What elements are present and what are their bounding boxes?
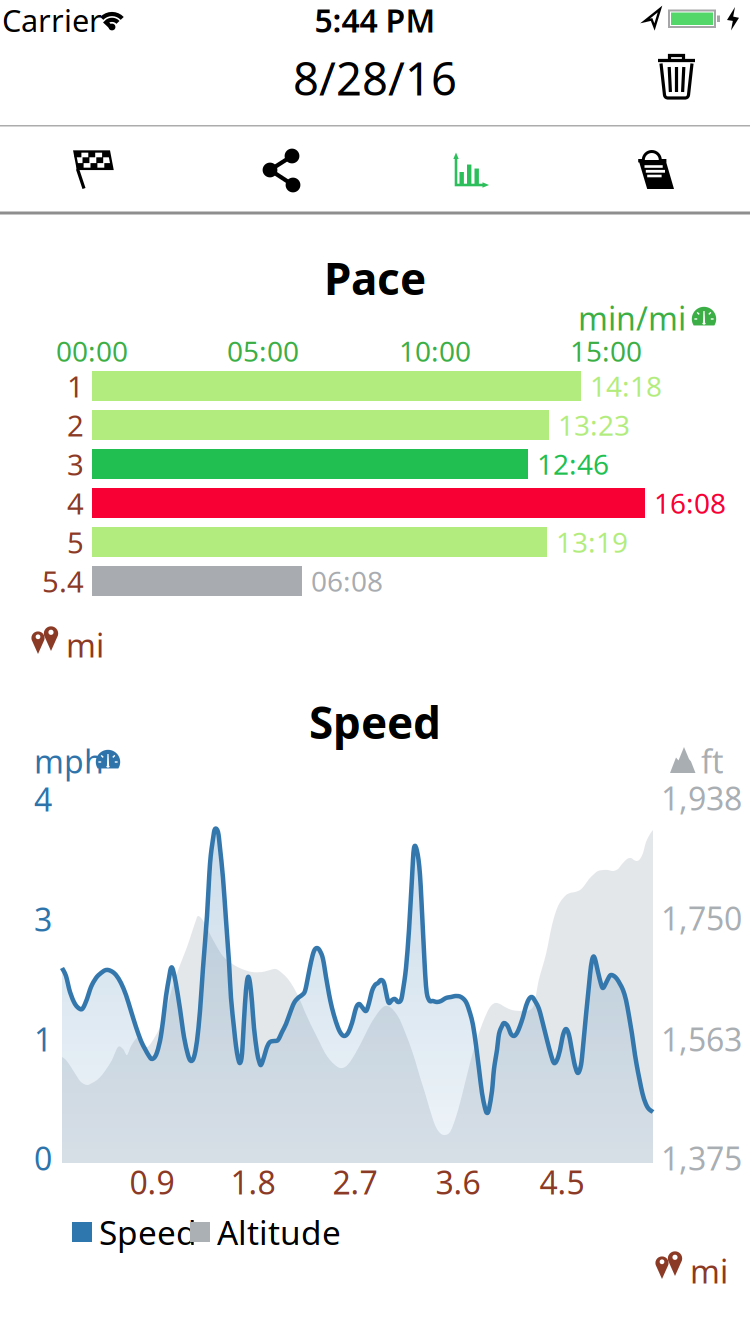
staticText: min/mi (578, 297, 686, 339)
staticText: 8/28/16 (293, 48, 457, 108)
staticText: 3 (67, 444, 84, 483)
staticText: Altitude (217, 1210, 341, 1254)
staticText: 2.7 (332, 1161, 377, 1203)
staticText: 00:00 (56, 332, 128, 370)
button[interactable] (395, 128, 545, 212)
button[interactable] (207, 128, 357, 212)
staticText: 3 (34, 898, 52, 940)
staticText: mi (66, 624, 104, 666)
staticText: 5:44 PM (314, 0, 435, 41)
staticText: 1,750 (661, 897, 742, 939)
staticText: 13:23 (558, 406, 630, 444)
staticText: 1.8 (230, 1161, 275, 1203)
staticText: 14:18 (590, 367, 662, 405)
staticText: mi (690, 1250, 728, 1292)
staticText: 10:00 (399, 332, 471, 370)
staticText: ft (701, 740, 724, 782)
staticText: 4 (67, 483, 84, 522)
button[interactable] (637, 40, 717, 120)
staticText: 0 (34, 1137, 52, 1179)
staticText: 2 (67, 405, 84, 444)
staticText: 3.6 (435, 1161, 480, 1203)
staticText: Speed (309, 693, 441, 751)
staticText: mph (34, 740, 104, 782)
staticText: 12:46 (537, 445, 609, 483)
button[interactable] (19, 128, 169, 212)
staticText: 1 (34, 1018, 52, 1060)
staticText: 4.5 (539, 1161, 584, 1203)
staticText: Carrier (2, 0, 102, 40)
staticText: Pace (324, 249, 426, 307)
staticText: Speed (99, 1210, 197, 1254)
staticText: 5.4 (42, 561, 84, 600)
staticText: 13:19 (556, 523, 628, 561)
staticText: 1,563 (661, 1018, 742, 1060)
staticText: 1 (67, 366, 84, 405)
staticText: 1,938 (661, 777, 742, 819)
staticText: 06:08 (311, 562, 383, 600)
staticText: 1,375 (661, 1137, 742, 1179)
staticText: 0.9 (129, 1161, 174, 1203)
staticText: 5 (67, 522, 84, 561)
staticText: 16:08 (654, 484, 726, 522)
staticText: 15:00 (570, 332, 642, 370)
staticText: 4 (34, 778, 52, 820)
staticText: 05:00 (227, 332, 299, 370)
button[interactable] (581, 128, 731, 212)
